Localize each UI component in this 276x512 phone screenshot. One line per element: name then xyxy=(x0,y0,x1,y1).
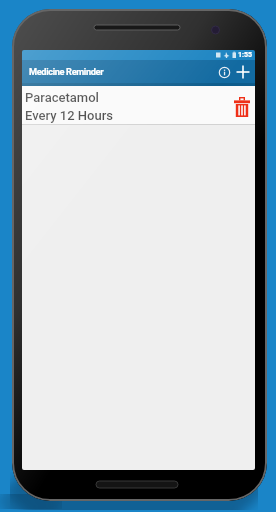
staticText: Medicine Reminder xyxy=(29,66,104,77)
button[interactable]: Paracetamol xyxy=(22,86,255,124)
staticText: 1:55 xyxy=(238,51,253,59)
button[interactable] xyxy=(232,61,254,83)
button[interactable] xyxy=(229,92,255,122)
button[interactable] xyxy=(216,61,232,83)
staticText: Paracetamol xyxy=(25,90,99,105)
staticText: Every 12 Hours xyxy=(25,108,113,123)
